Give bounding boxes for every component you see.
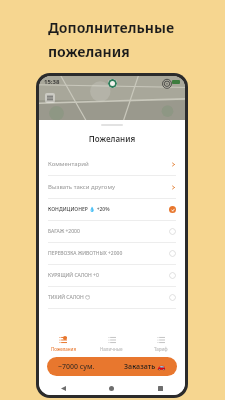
button[interactable]: БАГАЖ +2000 — [39, 221, 185, 243]
staticText: Комментарий — [48, 160, 89, 168]
button[interactable]: КУРЯЩИЙ САЛОН +0 — [39, 265, 185, 287]
button[interactable]: ТИХИЙ САЛОН 😶 — [39, 287, 185, 309]
button[interactable]: Пожелания — [39, 331, 87, 357]
staticText: 15:38 — [44, 78, 60, 86]
button[interactable]: Наличные — [87, 331, 136, 357]
button[interactable]: Тариф — [136, 331, 185, 357]
staticText: Пожелания — [51, 346, 76, 352]
staticText: БАГАЖ +2000 — [48, 228, 80, 235]
button[interactable]: Menu — [45, 93, 55, 103]
button[interactable]: Back — [39, 381, 87, 395]
staticText: Тариф — [154, 346, 168, 352]
button[interactable]: Home — [87, 381, 136, 395]
staticText: Дополнительные — [48, 18, 175, 37]
staticText: ТИХИЙ САЛОН 😶 — [48, 294, 91, 301]
staticText: ПЕРЕВОЗКА ЖИВОТНЫХ +2000 — [48, 250, 123, 257]
staticText: Наличные — [100, 346, 123, 352]
staticText: КУРЯЩИЙ САЛОН +0 — [48, 272, 99, 279]
button[interactable]: ПЕРЕВОЗКА ЖИВОТНЫХ +2000 — [39, 243, 185, 265]
staticText: пожелания — [48, 42, 130, 61]
button[interactable]: Комментарий — [39, 153, 185, 176]
staticText: Заказать 🚗 — [124, 362, 166, 372]
staticText: Пожелания — [39, 133, 185, 144]
staticText: ~7000 сум. — [58, 362, 95, 372]
button[interactable]: КОНДИЦИОНЕР 💧 +20% — [39, 199, 185, 221]
staticText: Вызвать такси другому — [48, 183, 116, 191]
button[interactable]: Вызвать такси другому — [39, 176, 185, 199]
button[interactable]: ~7000 сум. — [47, 357, 177, 376]
button[interactable]: Recents — [136, 381, 185, 395]
staticText: КОНДИЦИОНЕР 💧 +20% — [48, 206, 110, 213]
